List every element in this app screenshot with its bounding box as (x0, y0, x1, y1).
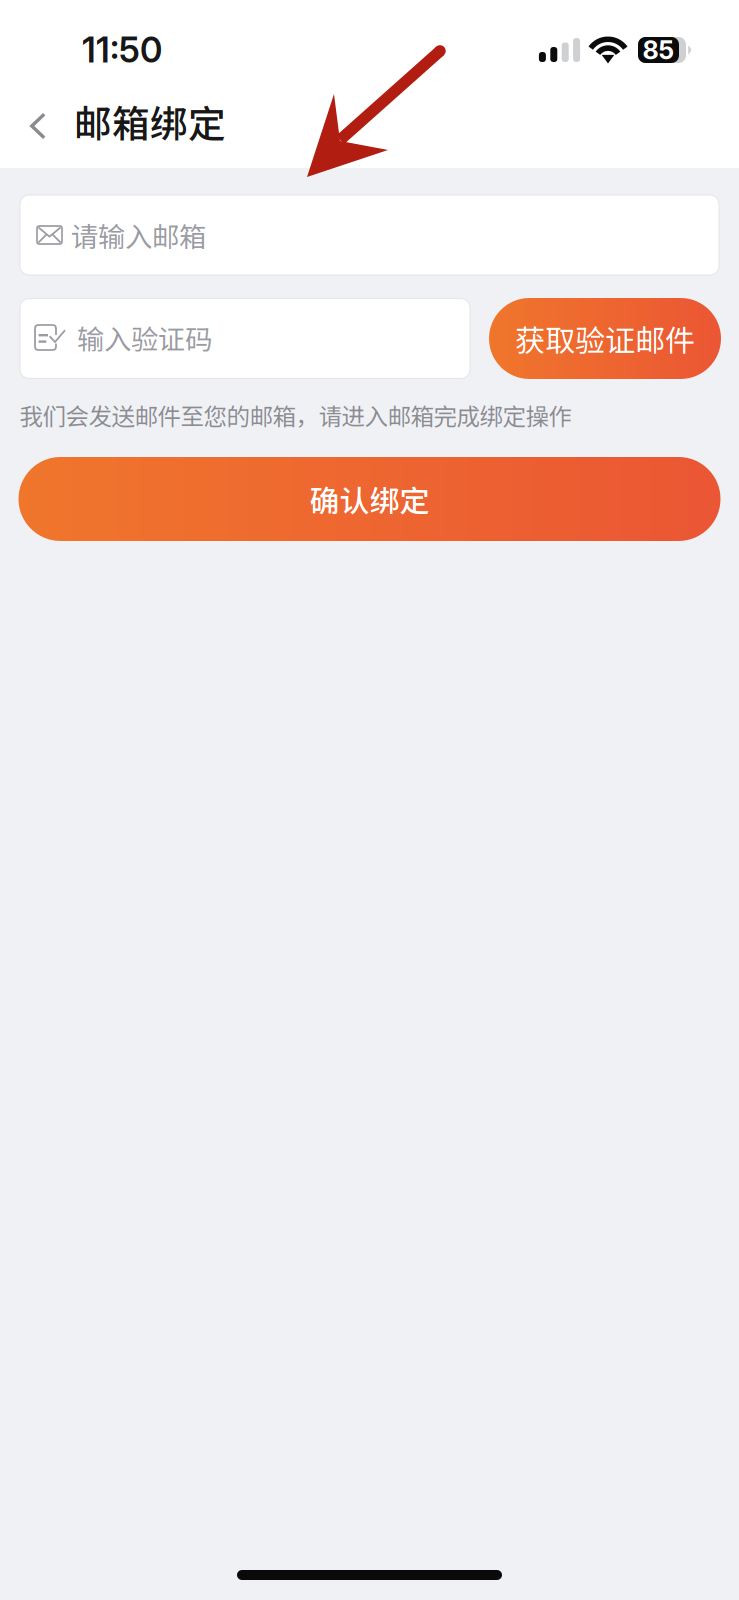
staticText: 请输入邮箱 (71, 215, 206, 255)
staticText: 获取验证邮件 (515, 317, 695, 360)
button[interactable]: 获取验证邮件 (489, 298, 721, 379)
button[interactable]: 确认绑定 (18, 457, 720, 541)
staticText: 我们会发送邮件至您的邮箱，请进入邮箱完成绑定操作 (19, 398, 571, 432)
staticText: 邮箱绑定 (74, 94, 226, 148)
staticText: 输入验证码 (77, 318, 212, 357)
staticText: 11:50 (82, 29, 162, 71)
staticText: 确认绑定 (309, 477, 429, 521)
staticText: 85 (642, 35, 674, 65)
button[interactable]: Back (9, 84, 67, 158)
